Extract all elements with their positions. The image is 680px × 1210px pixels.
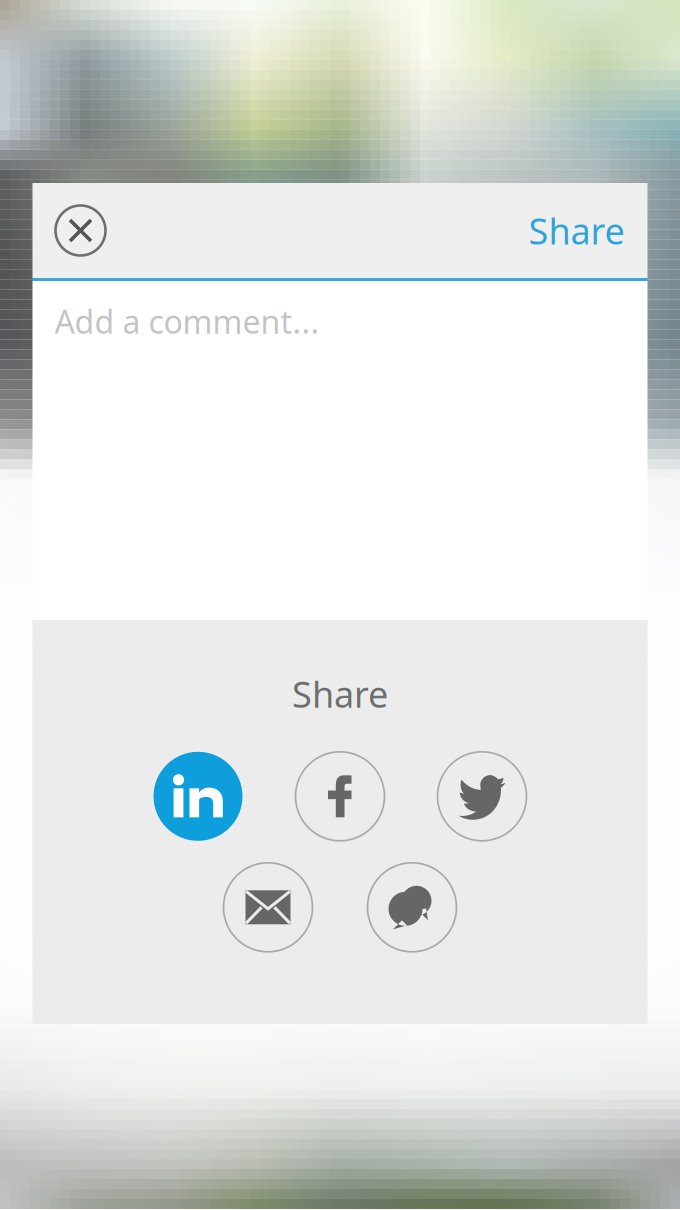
button[interactable]: Share (528, 207, 624, 254)
button[interactable]: Message (367, 863, 456, 952)
button[interactable]: Facebook (295, 752, 384, 841)
staticText: Share (528, 207, 624, 254)
button[interactable]: Email (223, 863, 312, 952)
button[interactable]: Close (55, 205, 105, 255)
button[interactable]: Twitter (437, 752, 526, 841)
staticText: Add a comment... (54, 300, 319, 342)
button[interactable]: LinkedIn (153, 752, 242, 841)
staticText: Share (292, 670, 388, 718)
